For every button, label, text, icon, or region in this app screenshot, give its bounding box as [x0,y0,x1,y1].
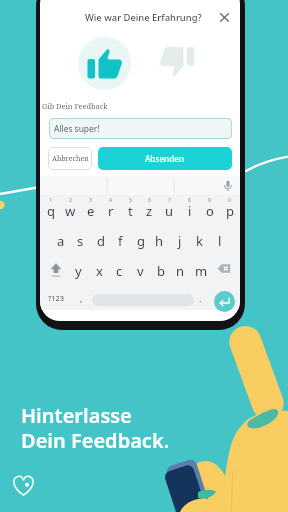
button[interactable]: l [210,225,229,255]
staticText: k [196,232,203,250]
button[interactable]: 6 [140,195,159,225]
staticText: ?123 [48,293,65,303]
staticText: r [108,202,114,220]
staticText: Absenden [145,153,185,164]
staticText: 4 [109,197,112,204]
staticText: o [206,202,214,220]
button[interactable]: Close [216,9,233,26]
staticText: d [97,232,105,250]
button[interactable]: n [171,255,190,285]
button[interactable]: 8 [180,195,199,225]
staticText: f [118,232,123,250]
staticText: j [178,232,182,250]
button[interactable]: x [90,255,109,285]
staticText: w [65,202,76,220]
button[interactable]: 7 [160,195,179,225]
staticText: v [137,262,144,280]
staticText: p [226,202,234,220]
button[interactable]: g [131,225,150,255]
button[interactable]: , [73,285,89,315]
staticText: h [155,232,164,250]
button[interactable]: v [131,255,150,285]
button[interactable]: c [110,255,129,285]
staticText: m [195,262,208,280]
button[interactable]: Thumbs up [78,37,131,90]
button[interactable]: App logo [10,472,37,499]
button[interactable]: Shift [44,255,68,285]
staticText: x [96,262,103,280]
button[interactable]: 3 [81,195,100,225]
staticText: s [77,232,84,250]
button[interactable]: a [51,225,70,255]
button[interactable]: Abbrechen [48,147,92,170]
staticText: Gib Dein Feedback [42,101,108,111]
staticText: . [199,292,202,304]
button[interactable]: y [69,255,88,285]
button[interactable]: b [151,255,170,285]
button[interactable]: 9 [200,195,219,225]
staticText: a [57,232,65,250]
staticText: g [137,232,145,250]
staticText: c [116,262,123,280]
staticText: i [188,202,192,220]
staticText: 9 [208,197,211,204]
button[interactable]: m [192,255,211,285]
staticText: , [80,292,83,304]
staticText: b [157,262,165,280]
staticText: l [218,232,222,250]
button[interactable]: ?123 [44,285,68,315]
button[interactable]: Thumbs down [157,45,196,79]
button[interactable]: Absenden [98,147,232,170]
button[interactable]: h [150,225,169,255]
button[interactable]: 4 [101,195,120,225]
button[interactable]: 5 [121,195,140,225]
button[interactable]: d [91,225,110,255]
staticText: 2 [69,197,72,204]
button[interactable]: 0 [220,195,239,225]
button[interactable]: Alles super! [49,118,232,139]
staticText: 0 [228,197,231,204]
button[interactable]: Enter [214,291,235,312]
staticText: 7 [168,197,171,204]
button[interactable]: 1 [41,195,60,225]
button[interactable]: Backspace [212,255,236,285]
button[interactable]: j [170,225,189,255]
staticText: e [87,202,95,220]
staticText: u [165,202,174,220]
button[interactable]: 2 [61,195,80,225]
staticText: 3 [89,197,92,204]
button[interactable]: s [71,225,90,255]
staticText: 1 [49,197,52,204]
staticText: Alles super! [54,123,100,134]
button[interactable]: k [190,225,209,255]
staticText: z [146,202,153,220]
button[interactable]: . [192,285,208,315]
staticText: Hinterlasse Dein Feedback. [21,402,170,454]
staticText: 8 [188,197,191,204]
staticText: n [176,262,185,280]
staticText: Abbrechen [52,154,89,164]
staticText: 6 [148,197,151,204]
staticText: t [128,202,133,220]
button[interactable]: f [111,225,130,255]
staticText: q [47,202,55,220]
staticText: y [75,262,82,280]
staticText: Wie war Deine Erfahrung? [85,11,202,24]
staticText: 5 [129,197,132,204]
